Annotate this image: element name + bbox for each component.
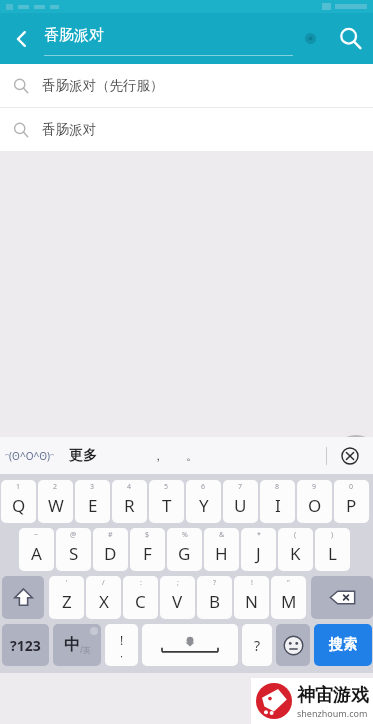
button[interactable]: 搜索: [314, 624, 372, 666]
staticText: Y: [199, 494, 209, 517]
staticText: G: [178, 542, 191, 565]
staticText: K: [290, 542, 301, 565]
button[interactable]: ": [271, 576, 306, 619]
staticText: 0: [349, 482, 354, 492]
staticText: B: [209, 590, 221, 613]
staticText: F: [143, 542, 152, 565]
button[interactable]: Back: [0, 13, 44, 64]
button[interactable]: ᵔ(ʘ^O^ʘ)ᵔ: [5, 449, 55, 463]
button[interactable]: ;: [160, 576, 195, 619]
button[interactable]: 香肠派对（先行服）: [0, 64, 373, 107]
button[interactable]: ?: [197, 576, 232, 619]
staticText: !: [120, 632, 124, 648]
staticText: 香肠派对: [44, 26, 104, 45]
staticText: (: [294, 530, 297, 540]
staticText: N: [245, 590, 258, 613]
staticText: P: [346, 494, 357, 517]
button[interactable]: 1: [1, 480, 36, 523]
button[interactable]: !: [105, 624, 138, 666]
staticText: ?123: [10, 636, 41, 655]
staticText: 搜索: [329, 636, 357, 654]
staticText: ': [66, 578, 68, 588]
button[interactable]: ?: [242, 624, 272, 666]
staticText: H: [215, 542, 228, 565]
staticText: L: [328, 542, 337, 565]
button[interactable]: 香肠派对: [0, 108, 373, 151]
staticText: *: [257, 530, 261, 540]
staticText: ~: [34, 530, 39, 540]
staticText: U: [234, 494, 247, 517]
staticText: 7: [238, 482, 243, 492]
staticText: ?: [254, 636, 261, 655]
button[interactable]: Search: [327, 13, 373, 64]
staticText: $: [145, 530, 150, 540]
staticText: 8: [275, 482, 280, 492]
staticText: :: [140, 578, 142, 588]
button[interactable]: @: [56, 528, 91, 571]
staticText: /: [102, 578, 105, 588]
button[interactable]: $: [130, 528, 165, 571]
staticText: %: [182, 530, 188, 540]
staticText: ，: [117, 648, 126, 659]
staticText: 。: [186, 448, 198, 463]
staticText: ;: [177, 578, 179, 588]
button[interactable]: 7: [223, 480, 258, 523]
button[interactable]: Switch language: [53, 624, 101, 666]
button[interactable]: ~: [19, 528, 54, 571]
button[interactable]: 5: [149, 480, 184, 523]
staticText: Q: [12, 494, 26, 517]
staticText: 2: [53, 482, 58, 492]
staticText: C: [135, 590, 146, 613]
staticText: ): [331, 530, 334, 540]
button[interactable]: Shift: [2, 576, 44, 619]
button[interactable]: 更多: [69, 447, 97, 465]
staticText: O: [308, 494, 322, 517]
button[interactable]: !: [234, 576, 269, 619]
staticText: &: [219, 530, 225, 540]
staticText: ": [287, 578, 290, 588]
staticText: D: [104, 542, 117, 565]
button[interactable]: #: [93, 528, 128, 571]
staticText: shenzhoum.com: [297, 707, 368, 719]
button[interactable]: Emoji: [276, 624, 310, 666]
button[interactable]: (: [278, 528, 313, 571]
staticText: 神宙游戏: [297, 684, 369, 707]
staticText: 9: [312, 482, 317, 492]
staticText: W: [48, 494, 64, 517]
staticText: 6: [201, 482, 206, 492]
button[interactable]: 9: [297, 480, 332, 523]
button[interactable]: 。: [175, 437, 209, 474]
button[interactable]: *: [241, 528, 276, 571]
button[interactable]: ?123: [2, 624, 49, 666]
button[interactable]: 0: [334, 480, 369, 523]
staticText: 1: [16, 482, 21, 492]
staticText: !: [251, 578, 253, 588]
button[interactable]: :: [123, 576, 158, 619]
button[interactable]: 3: [75, 480, 110, 523]
button[interactable]: 4: [112, 480, 147, 523]
button[interactable]: 6: [186, 480, 221, 523]
staticText: ?: [213, 578, 217, 588]
button[interactable]: Space: [142, 624, 238, 666]
button[interactable]: ): [315, 528, 350, 571]
button[interactable]: %: [167, 528, 202, 571]
staticText: 更多: [69, 447, 97, 465]
staticText: I: [275, 494, 281, 517]
staticText: J: [256, 542, 261, 565]
staticText: ᵔ(ʘ^O^ʘ)ᵔ: [5, 449, 55, 463]
button[interactable]: 2: [38, 480, 73, 523]
button[interactable]: ': [49, 576, 84, 619]
staticText: M: [281, 590, 297, 613]
staticText: 5: [164, 482, 169, 492]
button[interactable]: Backspace: [311, 576, 373, 619]
button[interactable]: Clear: [293, 13, 327, 64]
button[interactable]: 8: [260, 480, 295, 523]
button[interactable]: ，: [141, 437, 175, 474]
button[interactable]: Hide keyboard: [327, 437, 373, 474]
staticText: R: [124, 494, 135, 517]
button[interactable]: /: [86, 576, 121, 619]
button[interactable]: &: [204, 528, 239, 571]
staticText: 3: [90, 482, 95, 492]
staticText: Z: [62, 590, 72, 613]
staticText: X: [99, 590, 109, 613]
